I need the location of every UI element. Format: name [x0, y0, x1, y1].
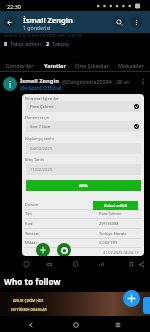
staticText: Kabul edildi	[104, 203, 127, 208]
staticText: Gönderiler	[5, 62, 34, 70]
staticText: Türkiye Havale	[99, 231, 127, 236]
button[interactable]: ARA	[26, 180, 141, 191]
button[interactable]: Compose new post	[123, 290, 140, 307]
button[interactable]: Makaleler	[112, 61, 150, 71]
button[interactable]: Back	[24, 318, 37, 331]
button[interactable]: Gönderiler	[0, 61, 38, 71]
staticText: Who to follow	[4, 276, 61, 287]
staticText: Durum	[25, 202, 39, 207]
staticText: 29F/36088	[99, 221, 119, 226]
button[interactable]: Add	[36, 243, 50, 256]
staticText: 8	[4, 40, 8, 48]
button[interactable]: Views	[96, 259, 107, 270]
staticText: i	[9, 79, 12, 90]
button[interactable]: Repost	[44, 259, 55, 270]
button[interactable]: ANLIK ÇEKİM HIZI	[0, 292, 150, 316]
staticText: Şubat 2025 tarihinden beri katıldı	[4, 32, 83, 39]
button[interactable]: Yanıtlar	[38, 61, 71, 71]
staticText: EN YÜKSEK ORANLAR	[11, 307, 47, 312]
staticText: Bitiş Tarihi	[25, 157, 45, 162]
staticText: Makaleler	[118, 62, 144, 70]
staticText: 04/02/2025	[30, 146, 53, 152]
button[interactable]: Share	[136, 259, 147, 270]
staticText: Para Çekme	[99, 211, 122, 216]
button[interactable]: Recent apps	[111, 318, 124, 331]
staticText: İsmail Zengin	[23, 15, 73, 25]
button[interactable]: Bookmark	[126, 259, 137, 270]
button[interactable]: Profile picture	[3, 77, 17, 91]
button[interactable]: More options	[130, 16, 142, 28]
button[interactable]: Finansal İşlemler	[22, 94, 144, 256]
button[interactable]: Like	[70, 259, 81, 270]
staticText: ARA	[79, 183, 88, 189]
staticText: 22:30	[7, 3, 21, 10]
staticText: Para Çekme	[30, 104, 54, 110]
button[interactable]: Reply	[21, 259, 32, 270]
staticText: 5.000 TRY	[99, 240, 118, 245]
staticText: Miktar	[25, 240, 38, 245]
staticText: Yöntem	[25, 231, 40, 236]
button[interactable]: Back	[4, 17, 15, 28]
staticText: Takipçi	[52, 40, 70, 48]
staticText: Başlangıç tarihi	[25, 136, 54, 141]
staticText: @eSpinCOfficial	[20, 84, 62, 92]
button[interactable]: Para Çekme	[30, 101, 139, 112]
button[interactable]: WhatsApp	[57, 243, 71, 256]
staticText: Kod	[25, 221, 33, 226]
staticText: Dönem seçin	[25, 115, 50, 120]
staticText: @Zenginisma25984 · 28 sn	[62, 78, 130, 85]
staticText: 2	[46, 40, 50, 48]
button[interactable]: 11/02/2025	[30, 164, 139, 175]
button[interactable]: Home	[69, 318, 82, 331]
staticText: Öne Çıkanlar	[75, 62, 109, 70]
staticText: Son 7 Gün	[30, 124, 51, 130]
staticText: 31.02.2025 04:30:11	[103, 250, 139, 255]
button[interactable]: Search	[113, 16, 125, 28]
staticText: İsmail Zengin	[20, 77, 60, 85]
staticText: Tipi	[25, 211, 32, 216]
button[interactable]: Öne Çıkanlar	[71, 61, 112, 71]
staticText: ANLIK ÇEKİM HIZI	[13, 298, 44, 303]
staticText: 1 gönderisi	[23, 24, 51, 31]
button[interactable]: More	[138, 76, 148, 86]
button[interactable]: Son 7 Gün	[30, 121, 139, 132]
staticText: Yanıtlar	[44, 62, 66, 70]
staticText: Takip edilen	[10, 40, 42, 48]
staticText: 11/02/2025	[30, 167, 53, 173]
button[interactable]: 04/02/2025	[30, 143, 139, 154]
staticText: Finansal İşlemler	[25, 95, 60, 101]
